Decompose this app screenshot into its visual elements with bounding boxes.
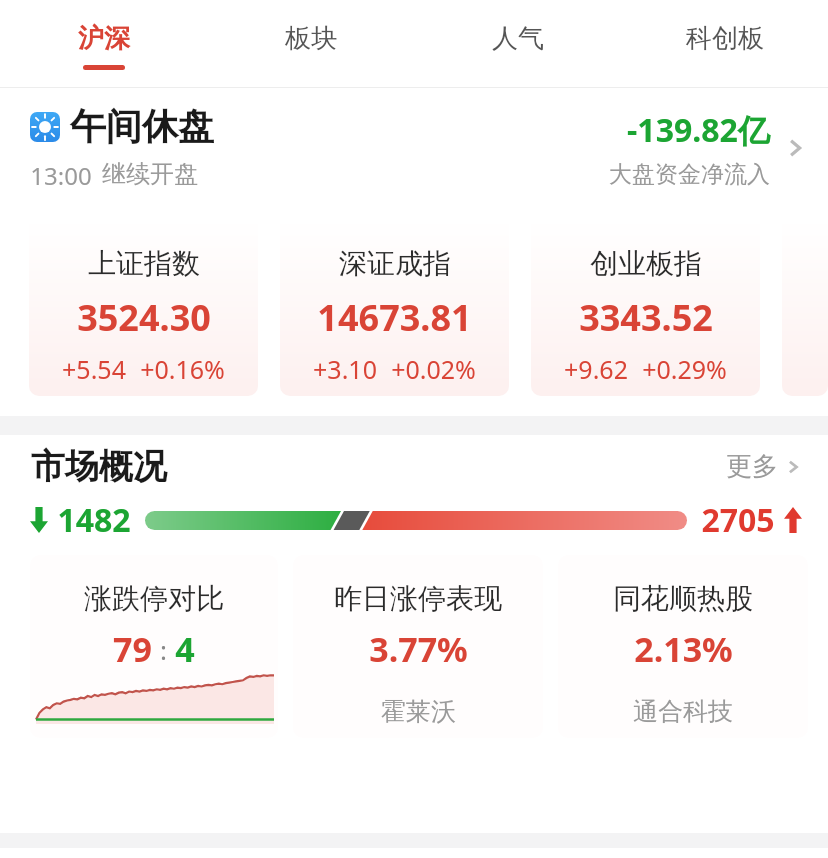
staticText: 2.13% <box>634 626 733 672</box>
staticText: 4 <box>175 626 195 672</box>
button[interactable]: 创业板指 <box>531 218 760 396</box>
staticText: 同花顺热股 <box>613 581 753 616</box>
other: 查看资金流入详情 <box>782 135 808 161</box>
staticText: 3524.30 <box>77 293 211 342</box>
staticText: 3343.52 <box>579 293 713 342</box>
staticText: : <box>160 632 167 667</box>
button[interactable]: 人气 <box>414 0 621 88</box>
staticText: +0.29% <box>642 352 727 386</box>
staticText: +0.16% <box>140 352 225 386</box>
button[interactable]: 同花顺热股 <box>558 555 808 738</box>
staticText: 板块 <box>285 22 337 55</box>
staticText: 人气 <box>492 22 544 55</box>
button[interactable]: 昨日涨停表现 <box>293 555 543 738</box>
staticText: 13:00 <box>30 159 92 192</box>
button[interactable]: 涨跌停对比 <box>30 555 278 738</box>
staticText: 午间休盘 <box>70 104 214 149</box>
staticText: 霍莱沃 <box>381 696 456 727</box>
staticText: 深证成指 <box>339 246 451 281</box>
button[interactable]: 沪深 <box>0 0 207 88</box>
staticText: 上证指数 <box>88 246 200 281</box>
staticText: 市场概况 <box>31 445 167 488</box>
button[interactable]: 午间休盘 <box>0 88 828 208</box>
staticText: 科创板 <box>686 22 764 55</box>
staticText: 79 <box>113 626 152 672</box>
button[interactable] <box>782 218 828 396</box>
staticText: +0.02% <box>391 352 476 386</box>
staticText: 继续开盘 <box>102 159 198 189</box>
staticText: 2705 <box>701 498 775 542</box>
staticText: 创业板指 <box>590 246 702 281</box>
staticText: 3.77% <box>369 626 468 672</box>
button[interactable]: 更多 <box>726 450 804 483</box>
button[interactable]: 上证指数 <box>29 218 258 396</box>
staticText: 1482 <box>57 498 131 542</box>
button[interactable]: 科创板 <box>621 0 828 88</box>
button[interactable]: 深证成指 <box>280 218 509 396</box>
staticText: 沪深 <box>78 22 130 55</box>
staticText: +9.62 <box>564 352 628 386</box>
staticText: 涨跌停对比 <box>84 581 224 616</box>
button[interactable]: 板块 <box>207 0 414 88</box>
staticText: 14673.81 <box>317 293 472 342</box>
staticText: 更多 <box>726 450 778 483</box>
staticText: -139.82亿 <box>627 108 770 152</box>
staticText: +3.10 <box>313 352 377 386</box>
staticText: +5.54 <box>62 352 126 386</box>
staticText: 通合科技 <box>633 696 733 727</box>
staticText: 大盘资金净流入 <box>609 160 770 189</box>
staticText: 昨日涨停表现 <box>334 581 502 616</box>
